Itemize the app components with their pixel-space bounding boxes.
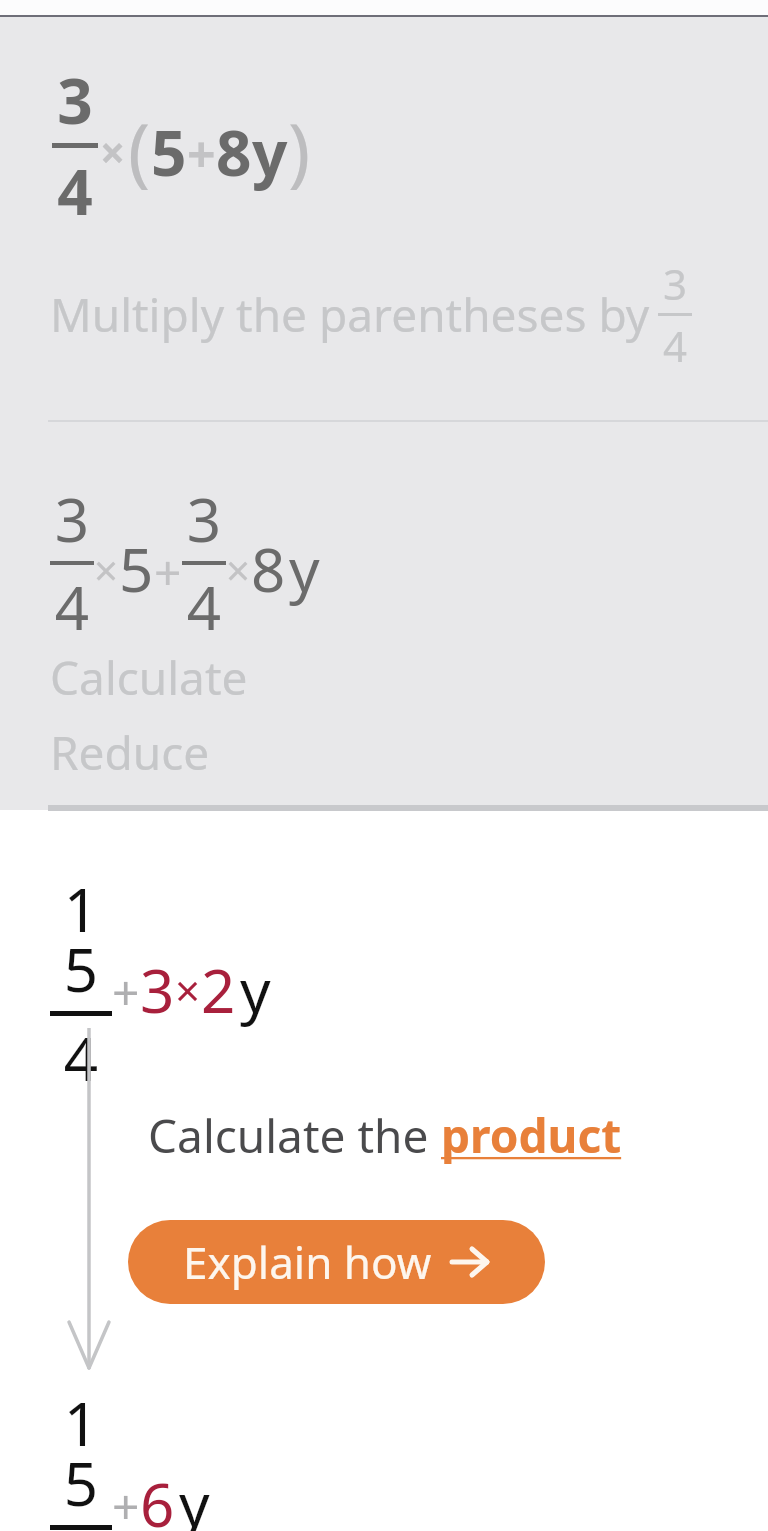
staticText: + xyxy=(112,959,140,1024)
staticText: 4 xyxy=(52,149,98,233)
staticText: Multiply the parentheses by xyxy=(50,283,650,346)
staticText: ) xyxy=(288,99,311,200)
staticText: 8 xyxy=(251,528,286,610)
button[interactable]: Explain how xyxy=(128,1220,545,1304)
staticText: + xyxy=(154,539,182,604)
staticText: 3 xyxy=(52,58,98,142)
staticText: 4 xyxy=(50,566,94,648)
staticText: ( xyxy=(128,99,151,200)
staticText: 4 xyxy=(182,566,226,648)
staticText: 3 xyxy=(658,255,692,312)
staticText: 4 xyxy=(50,1017,112,1099)
staticText: 3 xyxy=(182,478,226,560)
staticText: × xyxy=(94,541,119,598)
staticText: 15 xyxy=(50,1382,112,1524)
staticText: 5 xyxy=(119,528,154,610)
staticText: 2 xyxy=(201,949,236,1031)
staticText: Calculate the xyxy=(148,1104,429,1167)
staticText: y xyxy=(252,110,288,194)
staticText: 5 xyxy=(151,110,187,194)
staticText: × xyxy=(175,960,201,1020)
staticText: × xyxy=(100,122,126,182)
button[interactable]: Calculate the xyxy=(148,1104,622,1167)
staticText: Reduce xyxy=(50,721,210,784)
staticText: 4 xyxy=(658,317,692,374)
staticText: Explain how xyxy=(183,1232,432,1292)
staticText: × xyxy=(226,541,251,598)
staticText: 3 xyxy=(50,478,94,560)
staticText: 8 xyxy=(216,110,252,194)
staticText: y xyxy=(289,528,320,610)
staticText: y xyxy=(240,949,271,1031)
staticText: + xyxy=(187,120,216,188)
staticText: 6 xyxy=(140,1463,175,1531)
staticText: 3 xyxy=(140,949,175,1031)
staticText: + xyxy=(112,1473,140,1531)
staticText: 15 xyxy=(50,868,112,1010)
staticText: y xyxy=(179,1463,210,1531)
staticText: Calculate xyxy=(50,646,248,709)
staticText: product xyxy=(441,1104,622,1167)
